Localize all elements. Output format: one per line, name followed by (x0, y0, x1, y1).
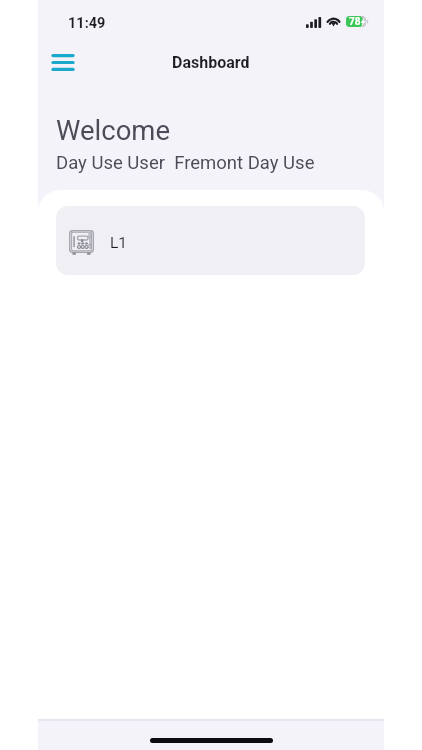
button[interactable]: Open navigation menu (41, 40, 85, 84)
button[interactable]: L1 (56, 206, 365, 275)
staticText: Day Use User Fremont Day Use (56, 152, 315, 174)
staticText: 78 (349, 16, 361, 27)
staticText: L1 (110, 234, 128, 252)
staticText: 11:49 (68, 15, 106, 32)
staticText: Dashboard (172, 53, 250, 72)
staticText: Welcome (56, 114, 171, 146)
